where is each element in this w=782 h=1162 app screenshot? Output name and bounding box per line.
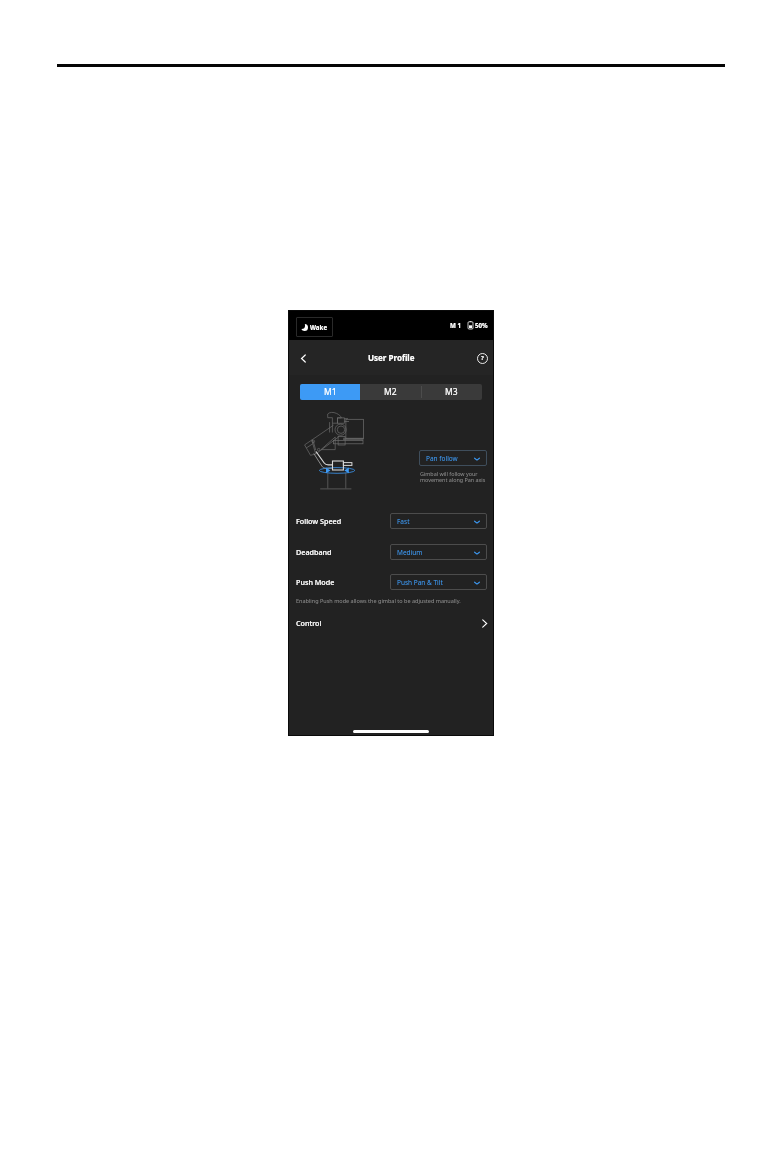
button[interactable]: Push Mode	[288, 567, 494, 596]
staticText: Push Pan & Tilt	[397, 578, 443, 587]
staticText: Control	[296, 618, 322, 628]
staticText: M 1	[450, 321, 461, 329]
staticText: Enabling Push mode allows the gimbal to …	[296, 597, 461, 604]
staticText: Pan follow	[426, 454, 458, 463]
staticText: 50%	[475, 321, 488, 329]
button[interactable]: Back	[292, 347, 314, 369]
staticText: Gimbal will follow your movement along P…	[420, 470, 486, 484]
button[interactable]: Medium	[390, 544, 487, 560]
staticText: User Profile	[368, 352, 415, 363]
button[interactable]: Push Pan & Tilt	[390, 574, 487, 590]
button[interactable]: Follow Speed	[288, 506, 494, 535]
staticText: Wake	[310, 323, 328, 331]
staticText: Medium	[397, 548, 423, 557]
button[interactable]: Deadband	[288, 537, 494, 566]
staticText: ?	[481, 354, 484, 362]
button[interactable]: M3	[421, 384, 482, 400]
button[interactable]: M1	[300, 384, 360, 400]
staticText: Deadband	[296, 547, 332, 557]
staticText: M3	[445, 386, 458, 398]
staticText: Push Mode	[296, 577, 335, 587]
staticText: M2	[384, 386, 397, 398]
button[interactable]: Pan follow	[419, 450, 487, 466]
staticText: Fast	[397, 517, 410, 526]
button[interactable]: M2	[360, 384, 421, 400]
button[interactable]: Control	[296, 612, 490, 634]
button[interactable]: Help	[471, 347, 493, 369]
button[interactable]: Fast	[390, 513, 487, 529]
staticText: Follow Speed	[296, 516, 342, 526]
staticText: M1	[324, 386, 337, 398]
button[interactable]: Wake	[296, 317, 333, 337]
